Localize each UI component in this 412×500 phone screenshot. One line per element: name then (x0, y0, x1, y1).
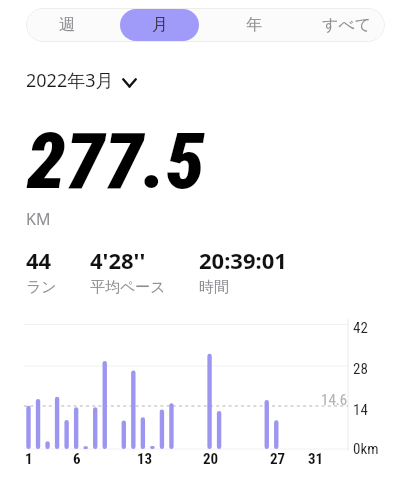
staticText: 週 (59, 15, 75, 35)
staticText: 14 (353, 401, 368, 419)
staticText: 42 (353, 319, 368, 337)
staticText: 年 (246, 15, 262, 35)
staticText: 13 (137, 450, 153, 468)
staticText: 6 (73, 450, 81, 468)
staticText: 31 (308, 450, 324, 468)
staticText: 28 (353, 360, 368, 378)
button[interactable]: すべて (308, 9, 386, 41)
button[interactable]: 4'28'' (90, 245, 166, 297)
staticText: 月 (152, 15, 168, 35)
staticText: 0km (353, 440, 379, 458)
staticText: 4'28'' (90, 245, 146, 275)
button[interactable]: 年 (199, 9, 308, 41)
staticText: 27 (270, 450, 286, 468)
staticText: 44 (26, 245, 52, 275)
button[interactable]: 20:39:01 (199, 245, 287, 297)
staticText: KM (26, 208, 51, 230)
staticText: 1 (25, 450, 33, 468)
staticText: 時間 (199, 278, 229, 297)
staticText: ラン (26, 278, 57, 297)
staticText: 2022年3月 (26, 68, 114, 93)
staticText: 20:39:01 (199, 245, 287, 275)
other: Change month (122, 73, 137, 89)
staticText: 277.5 (27, 116, 205, 207)
staticText: 14.6 (321, 391, 348, 409)
button[interactable]: 月 (120, 9, 199, 41)
staticText: 平均ペース (90, 278, 166, 297)
staticText: 20 (203, 450, 219, 468)
staticText: すべて (322, 15, 372, 35)
button[interactable]: 週 (26, 9, 107, 41)
button[interactable]: 44 (26, 245, 57, 297)
button[interactable]: 2022年3月 (26, 68, 137, 93)
